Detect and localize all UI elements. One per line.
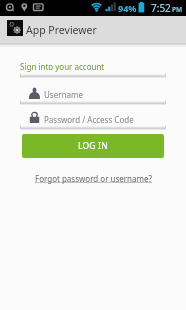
staticText: App Previewer [26,23,97,37]
button[interactable]: Username [0,85,186,102]
staticText: Sign into your account [20,61,105,72]
staticText: LOG IN [78,140,108,152]
staticText: 7:52 [151,1,171,15]
staticText: Password / Access Code [44,114,134,125]
staticText: Forgot password or username? [35,173,152,184]
staticText: PM [172,5,183,14]
button[interactable]: Forgot password or username? [32,171,155,186]
button[interactable]: Password / Access Code [0,110,186,127]
staticText: 94% [118,2,137,14]
staticText: Username [44,89,83,100]
button[interactable]: LOG IN [22,134,164,158]
